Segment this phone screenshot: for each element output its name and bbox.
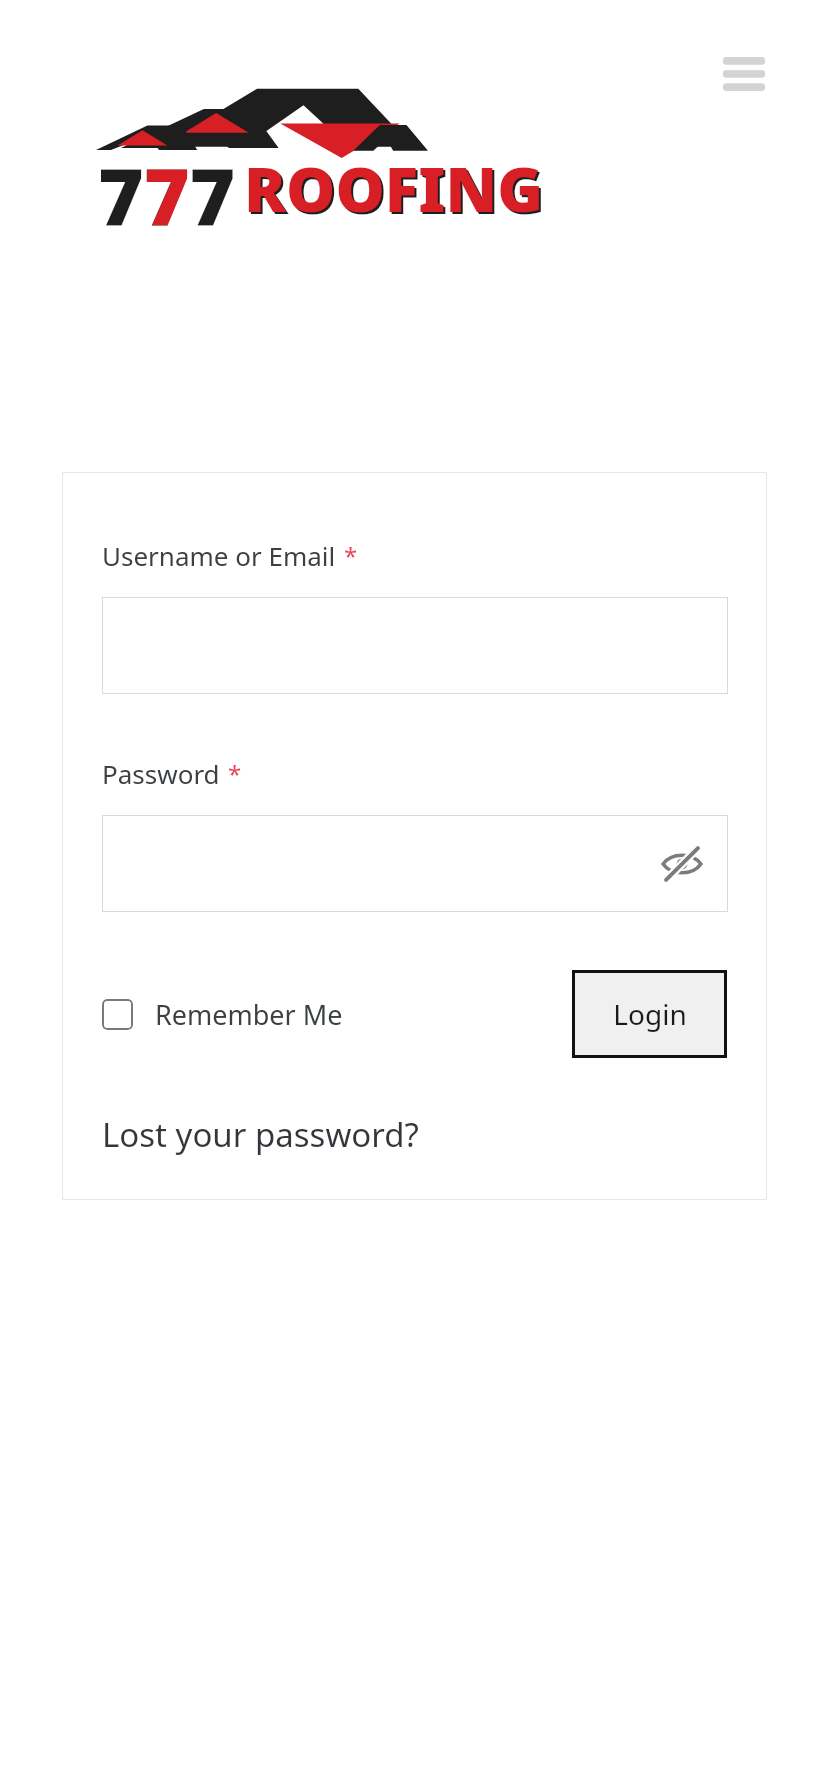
staticText: ROOFING: [246, 148, 546, 232]
staticText: 777: [98, 142, 236, 248]
button[interactable]: [102, 597, 728, 694]
staticText: Lost your password?: [102, 1112, 419, 1157]
button[interactable]: Show password: [652, 834, 712, 894]
staticText: Remember Me: [155, 996, 343, 1033]
staticText: 7: [98, 142, 144, 248]
button[interactable]: Menu: [712, 44, 776, 104]
staticText: 7: [144, 142, 190, 248]
button[interactable]: Remember Me: [102, 996, 343, 1033]
staticText: Password: [102, 756, 220, 791]
staticText: *: [344, 539, 358, 572]
staticText: *: [228, 757, 242, 790]
staticText: Login: [613, 995, 687, 1033]
staticText: ROOFING: [244, 146, 544, 230]
staticText: Username or Email: [102, 538, 336, 573]
button[interactable]: Lost your password?: [102, 1112, 419, 1157]
button[interactable]: Show password: [102, 815, 728, 912]
button[interactable]: Login: [572, 970, 727, 1058]
